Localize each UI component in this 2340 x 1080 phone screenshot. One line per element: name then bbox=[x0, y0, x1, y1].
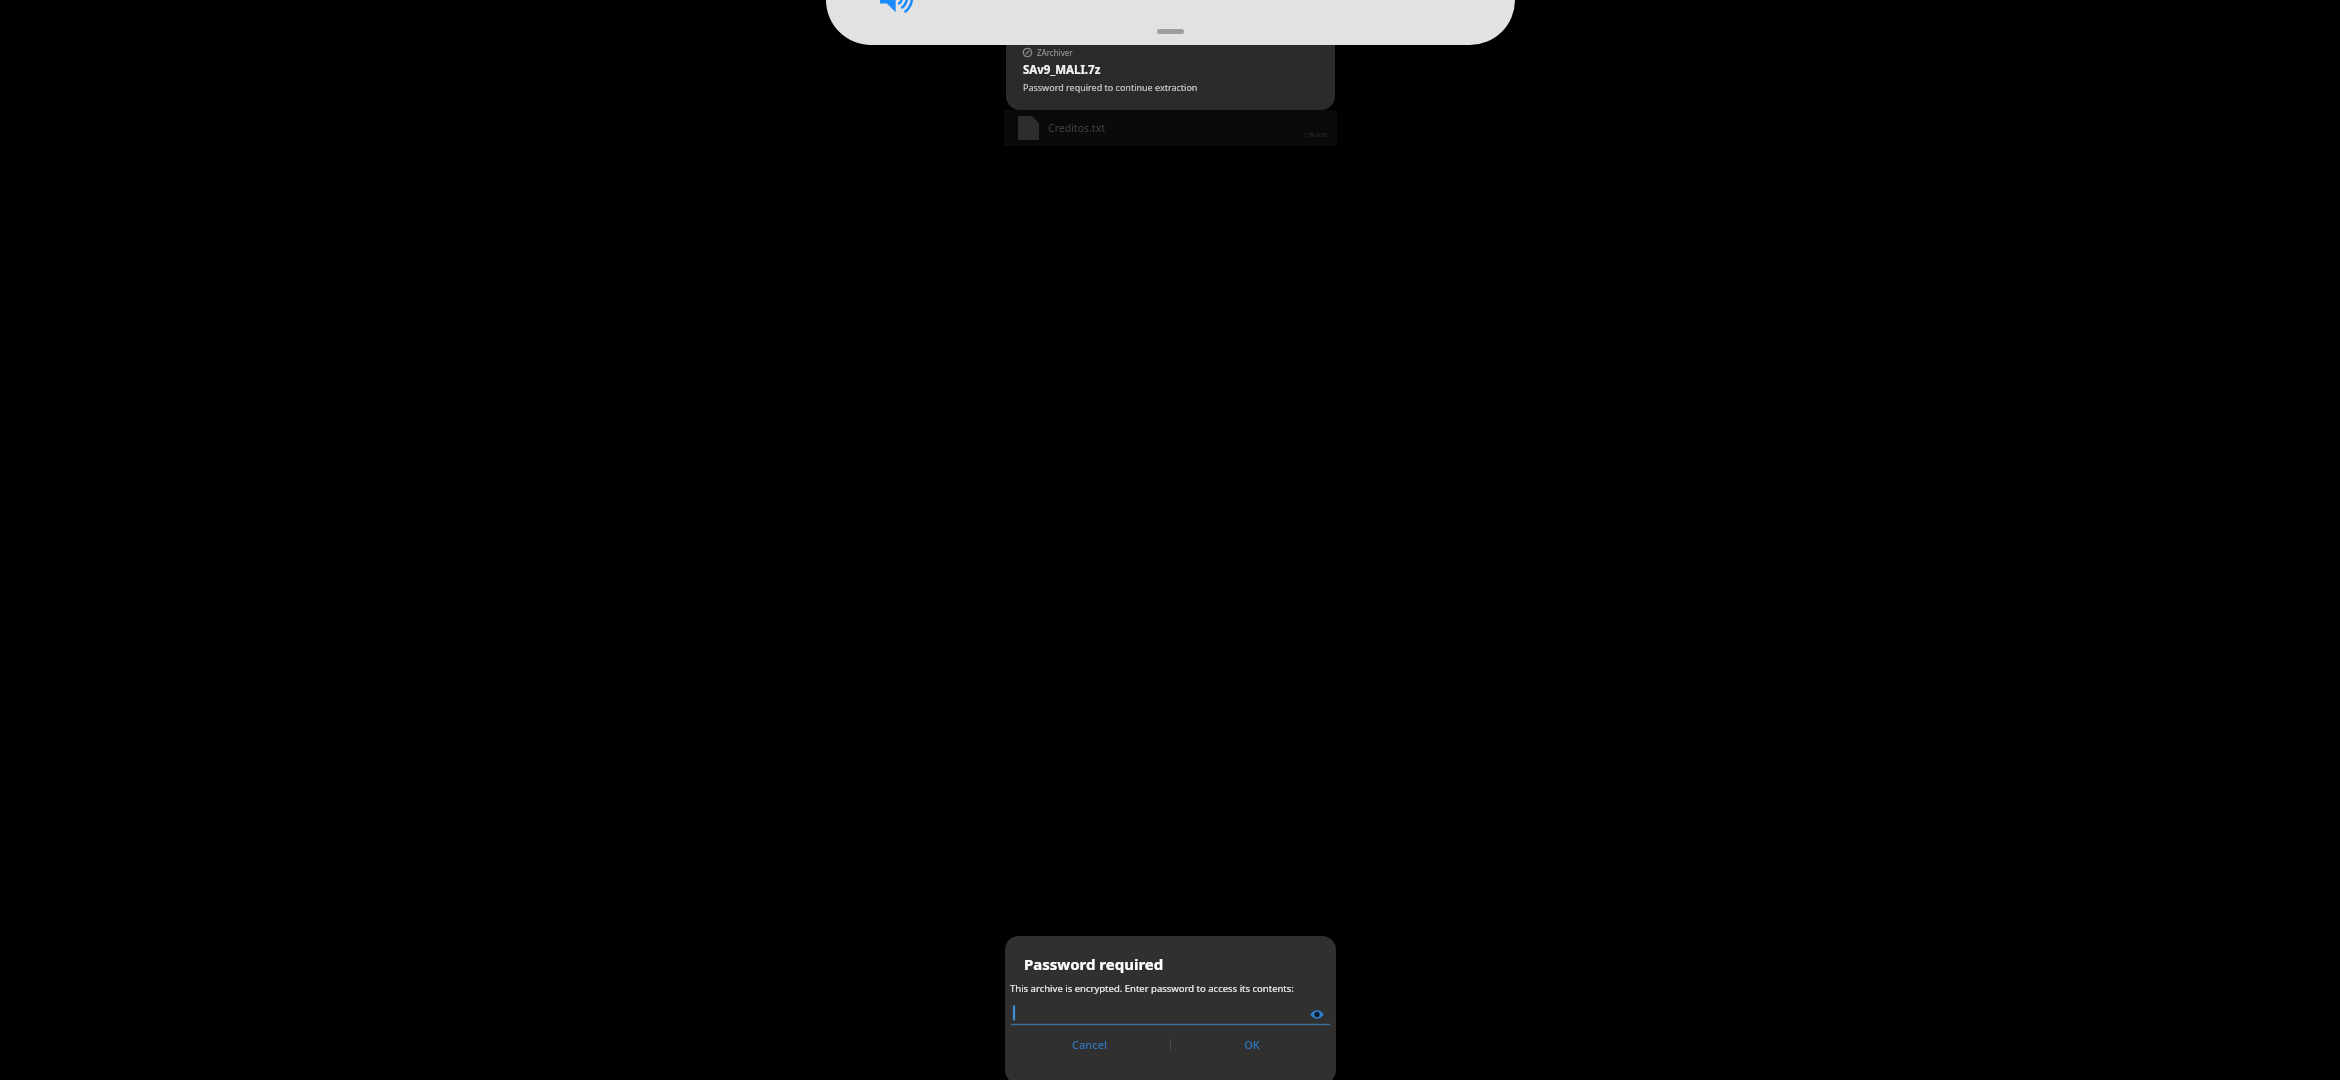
button[interactable]: Expand volume panel bbox=[1157, 29, 1184, 34]
staticText: ZArchiver bbox=[1037, 47, 1073, 58]
button[interactable]: Show password bbox=[1008, 1001, 1333, 1026]
button[interactable]: OK bbox=[1171, 1029, 1333, 1059]
button[interactable]: Creditos.txt bbox=[1004, 110, 1337, 146]
button[interactable]: Show password bbox=[1309, 1006, 1325, 1022]
staticText: This archive is encrypted. Enter passwor… bbox=[1010, 982, 1294, 995]
staticText: Cancel bbox=[1072, 1037, 1107, 1052]
button[interactable]: Volume bbox=[878, 0, 912, 15]
button[interactable]: ZArchiver bbox=[1006, 42, 1335, 110]
staticText: Creditos.txt bbox=[1048, 121, 1105, 135]
staticText: 139.80B bbox=[1304, 131, 1327, 139]
staticText: Password required to continue extraction bbox=[1023, 81, 1198, 93]
staticText: OK bbox=[1244, 1037, 1260, 1052]
staticText: SAv9_MALI.7z bbox=[1023, 62, 1101, 78]
button[interactable]: Cancel bbox=[1008, 1029, 1170, 1059]
staticText: Password required bbox=[1024, 954, 1164, 974]
